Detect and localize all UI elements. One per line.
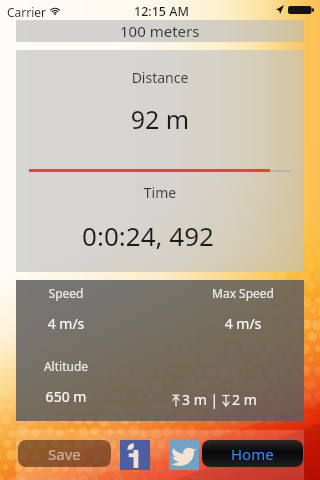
staticText: 3 m |	[182, 390, 222, 409]
staticText: 12:15 AM	[134, 3, 189, 20]
staticText: Carrier	[7, 4, 47, 20]
staticText: 650 m	[16, 387, 116, 406]
button[interactable]: 100 meters	[16, 20, 304, 42]
staticText: 100 meters	[120, 21, 200, 41]
staticText: Altitude	[16, 358, 116, 374]
button[interactable]: Save	[18, 440, 111, 467]
staticText: Save	[48, 444, 81, 464]
staticText: 0:0:24, 492	[4, 218, 292, 253]
staticText: 92 m	[16, 102, 304, 136]
staticText: 4 m/s	[16, 314, 116, 333]
staticText: 2 m	[232, 390, 257, 409]
staticText: Home	[231, 444, 274, 464]
staticText: Distance	[16, 68, 304, 87]
staticText: Speed	[16, 285, 116, 301]
button[interactable]: Home	[202, 440, 303, 467]
button[interactable]: Share on Facebook	[120, 440, 150, 470]
staticText: Max Speed	[193, 285, 293, 301]
staticText: 4 m/s	[193, 314, 293, 333]
button[interactable]: Share on Twitter	[169, 440, 199, 470]
staticText: Time	[16, 183, 304, 202]
